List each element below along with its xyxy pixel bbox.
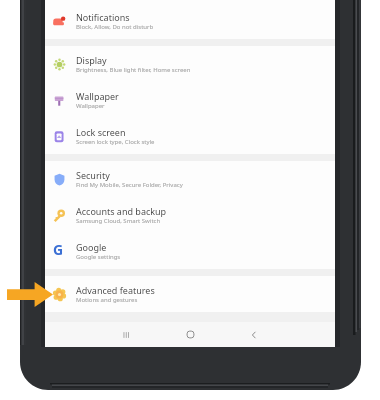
other: Pointer arrow (7, 282, 53, 307)
button[interactable]: Recents (105, 322, 147, 347)
staticText: Brightness, Blue light filter, Home scre… (76, 66, 191, 74)
staticText: Wallpaper (76, 90, 119, 102)
staticText: Google settings (76, 253, 121, 261)
button[interactable]: Display (45, 46, 335, 82)
staticText: Lock screen (76, 126, 126, 138)
button[interactable]: Lock screen (45, 118, 335, 154)
staticText: G (53, 240, 64, 259)
staticText: Samsung Cloud, Smart Switch (76, 217, 161, 225)
staticText: Motions and gestures (76, 296, 138, 304)
button[interactable]: Notifications (45, 3, 335, 39)
staticText: Notifications (76, 11, 130, 23)
staticText: Security (76, 169, 110, 181)
staticText: Display (76, 54, 107, 66)
staticText: Advanced features (76, 284, 155, 296)
staticText: Screen lock type, Clock style (76, 138, 155, 146)
button[interactable]: Accounts and backup (45, 197, 335, 233)
button[interactable]: Back (233, 322, 275, 347)
button[interactable]: Wallpaper (45, 82, 335, 118)
button[interactable]: Security (45, 161, 335, 197)
staticText: Accounts and backup (76, 205, 167, 217)
staticText: Google (76, 241, 107, 253)
button[interactable]: Advanced features (45, 276, 335, 312)
button[interactable]: G (45, 233, 335, 269)
staticText: Block, Allow, Do not disturb (76, 23, 154, 31)
staticText: Find My Mobile, Secure Folder, Privacy (76, 181, 183, 189)
button[interactable]: Home (169, 322, 211, 347)
staticText: Wallpaper (76, 102, 105, 110)
